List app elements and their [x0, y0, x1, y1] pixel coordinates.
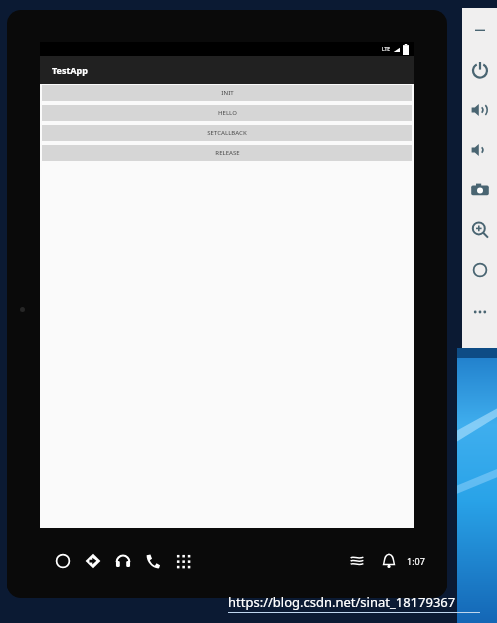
staticText: 1:07	[407, 555, 425, 567]
button[interactable]: Home	[55, 553, 71, 569]
staticText: RELEASE	[215, 149, 240, 157]
button[interactable]: Headphones	[115, 553, 131, 569]
button[interactable]: 1:07	[407, 555, 425, 567]
button[interactable]: Minimize	[470, 20, 490, 40]
button[interactable]: SETCALLBACK	[42, 125, 412, 141]
button[interactable]: TestApp	[40, 56, 414, 84]
button[interactable]: RELEASE	[42, 145, 412, 161]
button[interactable]: HELLO	[42, 105, 412, 121]
button[interactable]: Power	[470, 60, 490, 80]
button[interactable]: More	[470, 302, 490, 322]
button[interactable]: Screenshot	[470, 180, 490, 200]
staticText: INIT	[221, 89, 234, 97]
button[interactable]: Zoom	[470, 220, 490, 240]
button[interactable]: Apps	[175, 553, 191, 569]
button[interactable]: Phone	[145, 553, 161, 569]
staticText: TestApp	[52, 64, 88, 76]
staticText: LTE	[382, 46, 391, 53]
button[interactable]: Network	[349, 553, 365, 569]
staticText: SETCALLBACK	[207, 129, 247, 137]
button[interactable]: Notifications	[381, 553, 397, 569]
staticText: HELLO	[218, 109, 237, 117]
button[interactable]: INIT	[42, 85, 412, 101]
button[interactable]: Navigation	[85, 553, 101, 569]
staticText: https://blog.csdn.net/sinat_18179367	[228, 593, 456, 611]
button[interactable]: Volume up	[470, 100, 490, 120]
button[interactable]: Rotate	[470, 260, 490, 280]
button[interactable]: Volume down	[470, 140, 490, 160]
